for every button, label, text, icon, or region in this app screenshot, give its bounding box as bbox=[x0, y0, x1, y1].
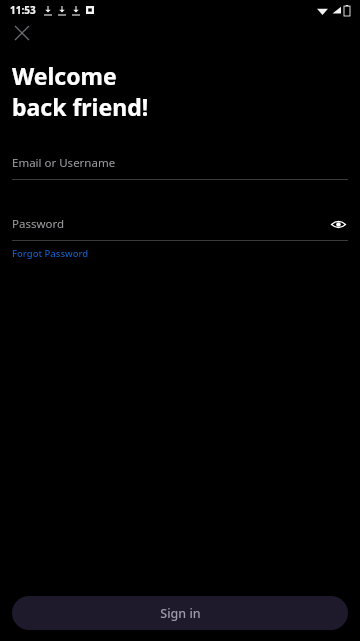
staticText: 11:53 bbox=[10, 3, 36, 17]
button[interactable]: Sign in bbox=[12, 596, 348, 630]
staticText: back friend! bbox=[12, 91, 149, 122]
button[interactable]: Password bbox=[12, 213, 348, 235]
button[interactable]: Show password bbox=[328, 214, 348, 234]
button[interactable]: Forgot Password bbox=[12, 247, 89, 260]
staticText: Forgot Password bbox=[12, 247, 89, 260]
button[interactable]: Close bbox=[9, 20, 35, 46]
button[interactable]: Email or Username bbox=[12, 152, 348, 174]
staticText: Password bbox=[12, 216, 328, 232]
staticText: Email or Username bbox=[12, 155, 348, 171]
staticText: Welcome bbox=[12, 60, 117, 91]
staticText: Sign in bbox=[160, 605, 201, 622]
